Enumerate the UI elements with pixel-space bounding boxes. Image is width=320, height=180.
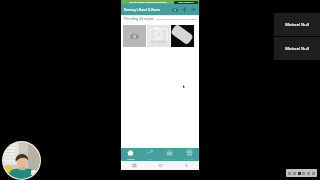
staticText: Ramsey's Bond & Rama	[124, 8, 160, 12]
staticText: View Options v	[178, 1, 194, 4]
button[interactable]: Michael Null	[274, 13, 320, 36]
button[interactable]	[171, 25, 194, 47]
button[interactable]: HOME	[121, 148, 140, 161]
button[interactable]: SALES	[140, 148, 159, 161]
button[interactable]: NO LOGO	[147, 25, 170, 47]
staticText: Michael Null	[285, 46, 309, 51]
button[interactable]: Michael Null	[274, 37, 320, 60]
staticText: Pending Receipts	[124, 16, 154, 21]
button[interactable]: Back	[173, 161, 199, 170]
button[interactable]: View Options v	[174, 1, 198, 4]
button[interactable]: Add	[181, 6, 188, 13]
staticText: CATALOG	[184, 157, 195, 160]
button[interactable]: PURCHASES	[159, 148, 179, 161]
button[interactable]: Home	[147, 161, 173, 170]
staticText: PURCHASES	[162, 157, 176, 160]
button[interactable]: Self view	[3, 142, 40, 179]
staticText: HOME	[127, 157, 135, 160]
staticText: SALES	[146, 157, 153, 160]
staticText: NO LOGO	[151, 40, 166, 44]
button[interactable]: Recents	[121, 161, 147, 170]
staticText: You are sharing Android phone screen	[129, 1, 167, 4]
button[interactable]: Camera	[171, 6, 178, 13]
button[interactable]: CATALOG	[179, 148, 199, 161]
button[interactable]	[123, 25, 146, 47]
button[interactable]: More options	[190, 6, 197, 13]
staticText: Michael Null	[285, 22, 309, 27]
